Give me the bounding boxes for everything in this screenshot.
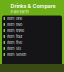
staticText: Item three — [7, 28, 24, 33]
button[interactable]: Item one — [2, 15, 62, 21]
staticText: Item four — [7, 34, 23, 39]
staticText: Item seven — [7, 52, 26, 57]
staticText: Pale Earth — [10, 9, 28, 14]
staticText: Item one — [7, 16, 22, 21]
staticText: Item five — [7, 40, 22, 45]
button[interactable]: Item three — [2, 27, 62, 33]
button[interactable]: Item five — [2, 39, 62, 45]
staticText: Drinks & Compare — [10, 3, 55, 9]
button[interactable]: Item seven — [2, 51, 62, 57]
button[interactable]: Item two — [2, 21, 62, 27]
staticText: Item two — [7, 22, 22, 27]
button[interactable]: Item six — [2, 45, 62, 51]
staticText: Item six — [7, 46, 21, 51]
button[interactable]: Item four — [2, 33, 62, 39]
